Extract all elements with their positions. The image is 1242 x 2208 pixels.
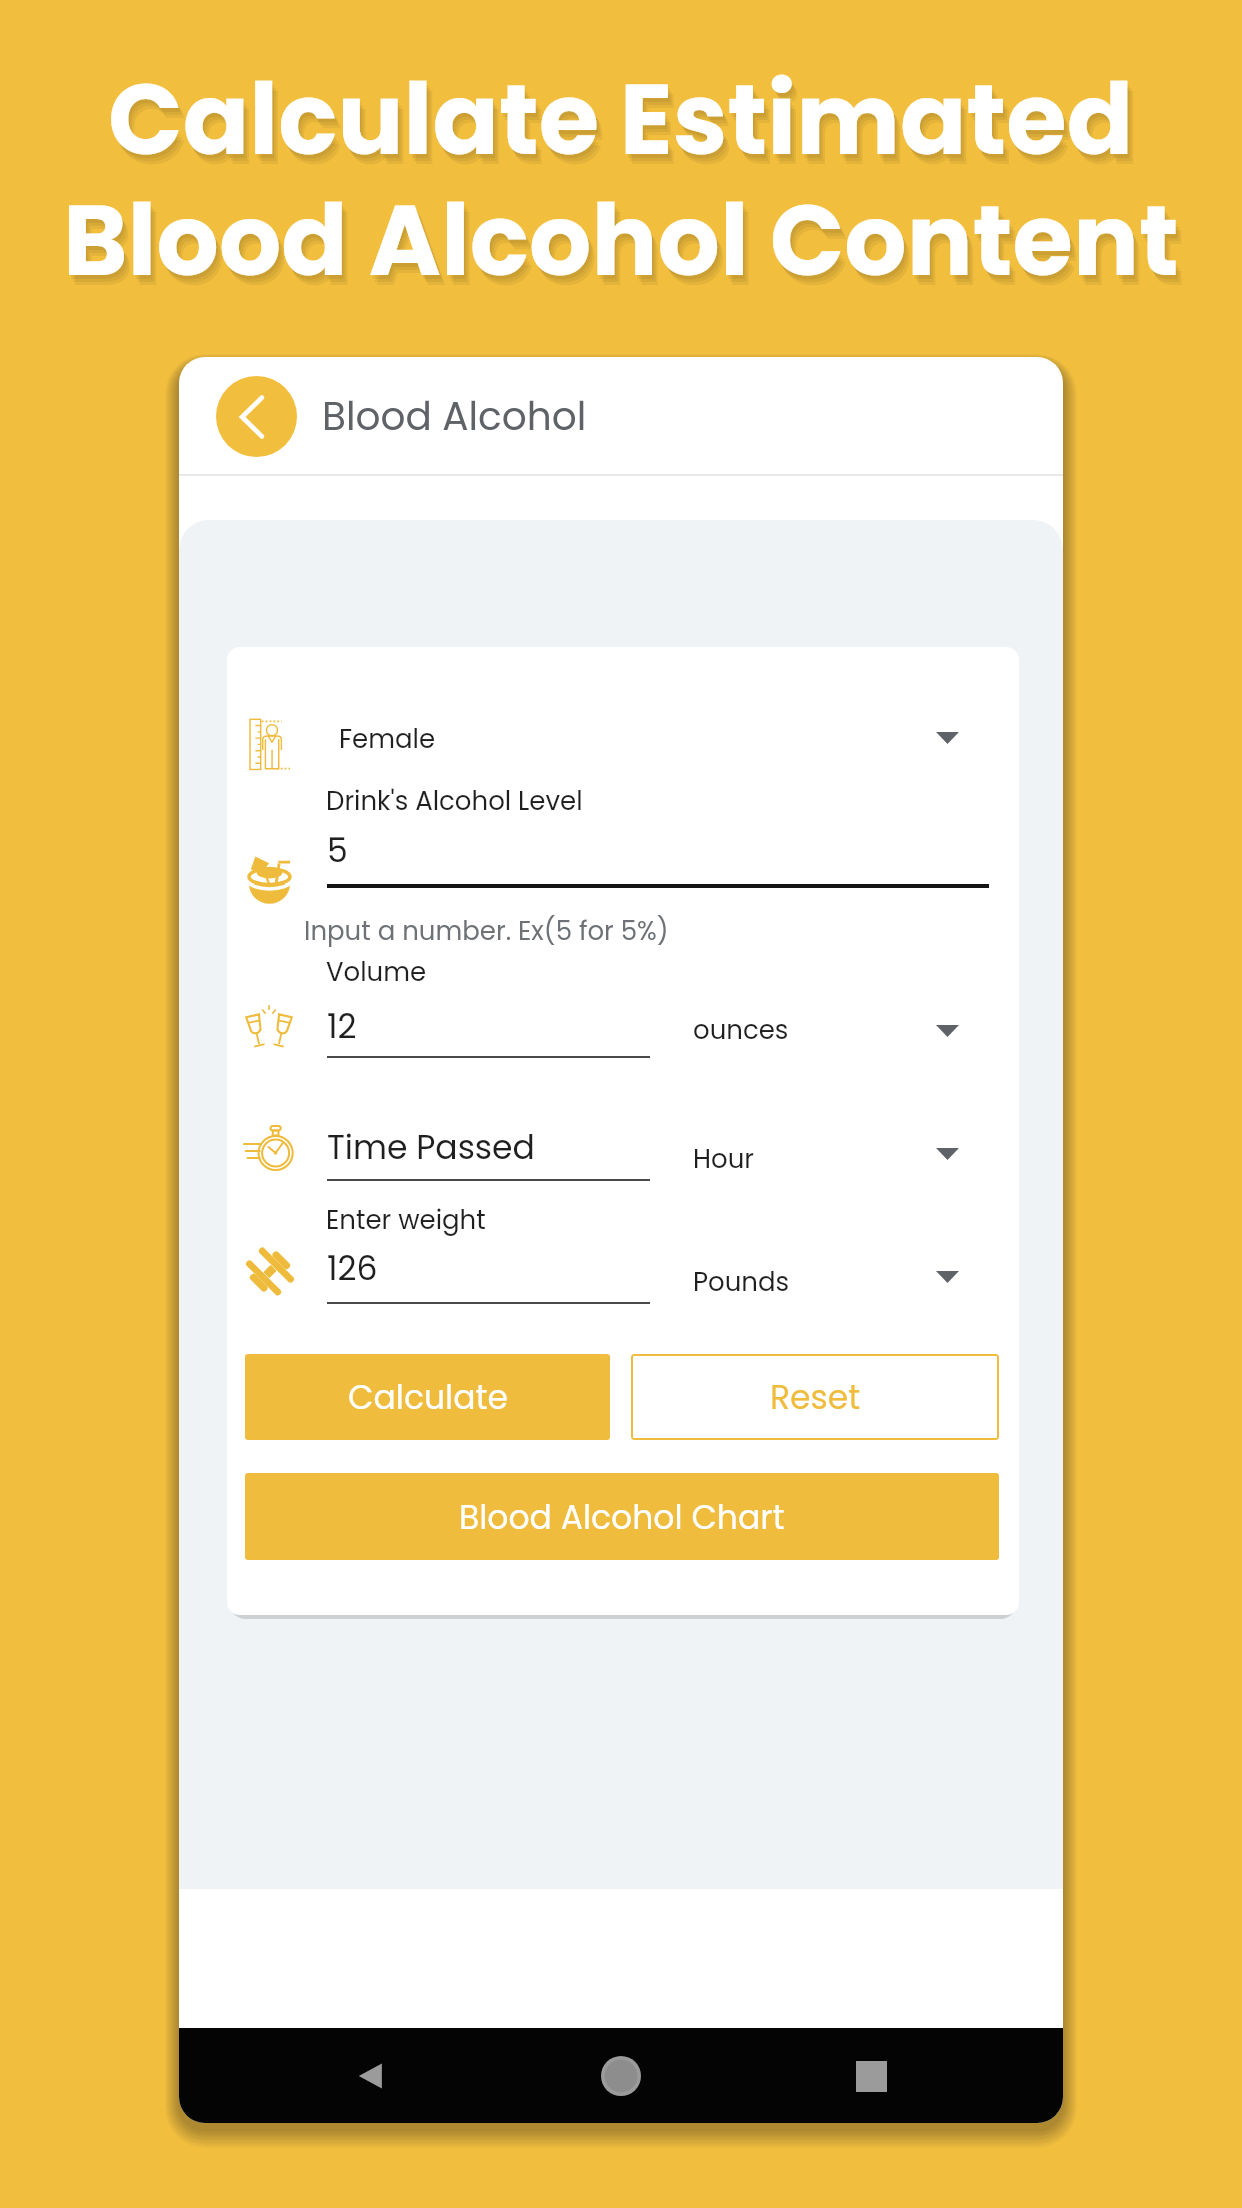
staticText: Calculate Estimated (114, 61, 1140, 198)
staticText: Calculate Estimated (112, 58, 1138, 195)
staticText: Hour (693, 1141, 754, 1177)
button[interactable]: Calculate (245, 1354, 610, 1440)
staticText: Blood Alcohol (322, 389, 587, 444)
button[interactable]: Female (322, 709, 992, 767)
staticText: Calculate Estimated (108, 51, 1134, 188)
staticText: Blood Alcohol Content (69, 182, 1185, 319)
staticText: 5 (327, 827, 348, 873)
staticText: Time Passed (327, 1124, 535, 1170)
staticText: 126 (327, 1245, 378, 1291)
button[interactable]: Recent apps (835, 2040, 907, 2112)
staticText: Pounds (693, 1264, 790, 1300)
staticText: Reset (770, 1374, 861, 1420)
staticText: Calculate (348, 1374, 508, 1420)
staticText: Blood Alcohol Content (63, 172, 1179, 309)
staticText: Blood Alcohol Content (65, 176, 1181, 313)
staticText: Drink's Alcohol Level (326, 783, 583, 819)
staticText: Input a number. Ex(5 for 5%) (304, 913, 669, 949)
button[interactable]: Home (585, 2040, 657, 2112)
staticText: Female (339, 721, 436, 757)
button[interactable]: Blood Alcohol Chart (245, 1473, 999, 1560)
staticText: ounces (693, 1012, 789, 1048)
button[interactable]: Back (335, 2040, 407, 2112)
staticText: Volume (326, 954, 427, 990)
staticText: Blood Alcohol Chart (459, 1494, 785, 1540)
button[interactable]: ounces (682, 1003, 992, 1059)
button[interactable]: Back (216, 376, 297, 457)
staticText: Calculate Estimated (110, 55, 1136, 192)
staticText: Blood Alcohol Content (67, 179, 1183, 316)
button[interactable]: Reset (631, 1354, 999, 1440)
staticText: Enter weight (326, 1202, 486, 1238)
staticText: 12 (327, 1003, 357, 1049)
